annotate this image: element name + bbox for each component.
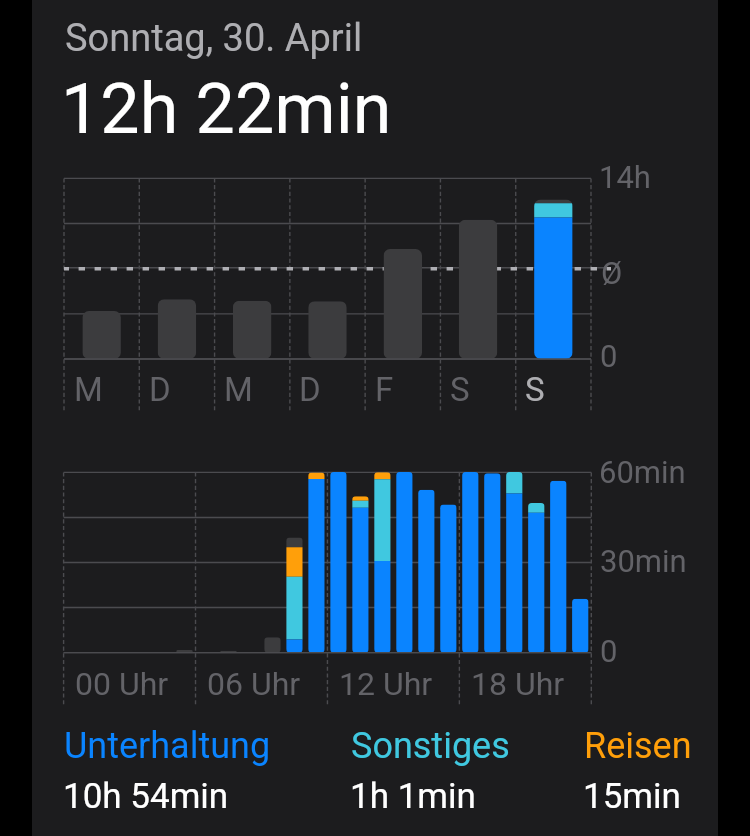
staticText: 30min bbox=[600, 543, 687, 579]
staticText: Sonntag, 30. April bbox=[65, 16, 363, 61]
staticText: 00 Uhr bbox=[75, 665, 169, 703]
staticText: F bbox=[375, 370, 394, 409]
staticText: 18 Uhr bbox=[471, 665, 565, 703]
staticText: 60min bbox=[599, 454, 686, 490]
staticText: 0 bbox=[600, 633, 618, 669]
staticText: D bbox=[149, 370, 171, 409]
button[interactable]: Unterhaltung bbox=[64, 725, 271, 767]
staticText: S bbox=[450, 370, 470, 409]
staticText: 15min bbox=[583, 776, 681, 817]
button[interactable]: Sonntag, 30. April bbox=[32, 0, 718, 836]
staticText: 14h bbox=[599, 159, 651, 195]
staticText: Unterhaltung bbox=[64, 725, 271, 767]
staticText: 0 bbox=[600, 338, 618, 374]
staticText: 12 Uhr bbox=[339, 665, 433, 703]
staticText: Reisen bbox=[584, 725, 692, 767]
staticText: D bbox=[299, 370, 321, 409]
staticText: 06 Uhr bbox=[207, 665, 301, 703]
staticText: 10h 54min bbox=[63, 776, 229, 817]
button[interactable]: Sonstiges bbox=[351, 725, 510, 767]
staticText: S bbox=[525, 370, 545, 409]
staticText: M bbox=[74, 370, 103, 409]
staticText: 1h 1min bbox=[350, 776, 476, 817]
staticText: M bbox=[224, 370, 253, 409]
staticText: Sonstiges bbox=[351, 725, 510, 767]
button[interactable]: Reisen bbox=[584, 725, 692, 767]
staticText: 12h 22min bbox=[61, 68, 392, 150]
staticText: Ø bbox=[601, 255, 623, 291]
